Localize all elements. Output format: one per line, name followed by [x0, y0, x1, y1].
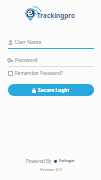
button[interactable]: Remember Password?: [8, 69, 63, 77]
button[interactable]: Secure Login: [8, 84, 94, 96]
staticText: Trackingpro: [59, 159, 75, 163]
staticText: Remember Password?: [15, 70, 63, 76]
staticText: User Name: [15, 39, 42, 46]
button[interactable]: User Name: [8, 37, 94, 47]
staticText: Secure Login: [38, 87, 70, 94]
staticText: Version 2.9: [40, 167, 62, 173]
staticText: Powered By: [26, 158, 52, 164]
staticText: Trackingpro: [37, 11, 76, 20]
button[interactable]: Password: [8, 55, 94, 65]
staticText: Password: [15, 57, 38, 64]
